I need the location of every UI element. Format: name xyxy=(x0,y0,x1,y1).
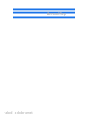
button[interactable]: Document header xyxy=(13,8,75,19)
button[interactable]: Annual Rep xyxy=(47,11,66,16)
button[interactable]: · abcd x dolor amet xyxy=(4,111,33,115)
